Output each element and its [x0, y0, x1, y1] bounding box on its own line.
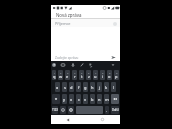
button[interactable]: d	[69, 82, 74, 92]
staticText: u	[94, 74, 97, 79]
button[interactable]: Voice input	[69, 61, 77, 69]
button[interactable]: 6	[86, 70, 91, 80]
staticText: 3	[67, 71, 69, 74]
button[interactable]: m	[104, 94, 109, 104]
staticText: e	[66, 74, 69, 79]
button[interactable]: Zadejte zprávu	[51, 53, 110, 61]
button[interactable]: .	[105, 106, 109, 114]
staticText: z	[88, 74, 90, 79]
button[interactable]: a	[55, 82, 60, 92]
staticText: p	[115, 74, 118, 79]
button[interactable]: 2	[58, 70, 63, 80]
staticText: y	[63, 97, 66, 102]
button[interactable]: Home	[85, 115, 120, 124]
button[interactable]: 0	[114, 70, 119, 80]
staticText: 7	[95, 71, 97, 74]
button[interactable]: y	[62, 94, 67, 104]
button[interactable]: 5	[79, 70, 84, 80]
staticText: m	[105, 97, 109, 102]
button[interactable]: emoji	[60, 106, 66, 114]
staticText: Další	[112, 108, 119, 112]
button[interactable]: c	[76, 94, 81, 104]
staticText: o	[108, 74, 111, 79]
staticText: r	[74, 74, 76, 79]
button[interactable]: language	[68, 106, 74, 114]
staticText: f	[78, 85, 80, 90]
staticText: 8	[102, 71, 104, 74]
staticText: w	[59, 74, 63, 79]
button[interactable]: Další	[111, 106, 119, 114]
staticText: 2	[60, 71, 62, 74]
staticText: a	[56, 85, 59, 90]
staticText: 1	[54, 71, 56, 74]
button[interactable]: Gboard	[50, 61, 58, 69]
button[interactable]: Translate	[87, 61, 95, 69]
staticText: Zadejte zprávu	[55, 55, 79, 60]
staticText: k	[105, 85, 108, 90]
button[interactable]: g	[83, 82, 88, 92]
staticText: 5	[81, 71, 83, 74]
staticText: g	[84, 85, 87, 90]
button[interactable]: Handwriting	[78, 61, 86, 69]
staticText: q	[53, 74, 56, 79]
button[interactable]: 1	[52, 70, 56, 80]
button[interactable]: n	[97, 94, 102, 104]
button[interactable]: f	[76, 82, 81, 92]
staticText: v	[84, 97, 87, 102]
button[interactable]: ?123	[52, 106, 58, 114]
staticText: j	[99, 85, 101, 90]
button[interactable]: shift	[52, 94, 60, 104]
button[interactable]: backspace	[111, 94, 119, 104]
staticText: 6	[88, 71, 90, 74]
staticText: 4	[74, 71, 76, 74]
button[interactable]: x	[69, 94, 74, 104]
staticText: 9	[109, 71, 111, 74]
button[interactable]: 8	[100, 70, 105, 80]
staticText: t	[81, 74, 83, 79]
button[interactable]: 4	[72, 70, 77, 80]
button[interactable]: Back	[51, 115, 85, 124]
staticText: ?123	[52, 108, 58, 112]
button[interactable]: h	[90, 82, 95, 92]
button[interactable]: Add recipient	[112, 21, 117, 26]
button[interactable]: l	[111, 82, 116, 92]
staticText: h	[91, 85, 94, 90]
staticText: .	[106, 108, 108, 113]
staticText: c	[78, 97, 80, 102]
button[interactable]: Clipboard	[59, 61, 67, 69]
staticText: d	[70, 85, 73, 90]
button[interactable]: Send	[110, 54, 117, 61]
button[interactable]: k	[104, 82, 109, 92]
button[interactable]: 9	[107, 70, 112, 80]
button[interactable]: Příjemce	[51, 19, 120, 27]
staticText: i	[102, 74, 104, 79]
staticText: l	[113, 85, 115, 90]
button[interactable]: Collapse keyboard	[109, 61, 117, 69]
button[interactable]: 3	[65, 70, 70, 80]
staticText: b	[91, 97, 94, 102]
button[interactable]: 7	[93, 70, 98, 80]
button[interactable]: j	[97, 82, 102, 92]
staticText: 0	[116, 71, 118, 74]
staticText: Příjemce	[55, 21, 71, 26]
button[interactable]: s	[62, 82, 67, 92]
staticText: Nová zpráva	[56, 12, 82, 18]
button[interactable]: b	[90, 94, 95, 104]
button[interactable]: v	[83, 94, 88, 104]
staticText: n	[98, 97, 101, 102]
staticText: x	[70, 97, 73, 102]
staticText: s	[64, 85, 66, 90]
